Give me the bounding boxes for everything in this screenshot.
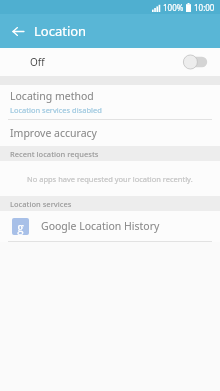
staticText: Google Location History xyxy=(41,219,160,233)
staticText: Locating method xyxy=(10,89,94,103)
button[interactable]: Locating method xyxy=(0,85,220,119)
button[interactable]: Improve accuracy xyxy=(0,120,220,146)
staticText: Recent location requests xyxy=(10,149,99,159)
button[interactable]: Back xyxy=(6,19,30,43)
staticText: Improve accuracy xyxy=(10,126,97,140)
button[interactable]: Off xyxy=(0,48,220,76)
staticText: g xyxy=(17,219,24,235)
staticText: Off xyxy=(30,55,45,69)
button[interactable]: Location toggle, off xyxy=(182,53,212,71)
button[interactable]: g xyxy=(0,211,220,241)
staticText: 10:00 xyxy=(194,2,215,13)
staticText: Location services xyxy=(10,199,72,209)
staticText: Location xyxy=(34,22,87,40)
staticText: No apps have requested your location rec… xyxy=(27,174,193,184)
staticText: 100% xyxy=(163,2,184,13)
staticText: Location services disabled xyxy=(10,105,102,115)
